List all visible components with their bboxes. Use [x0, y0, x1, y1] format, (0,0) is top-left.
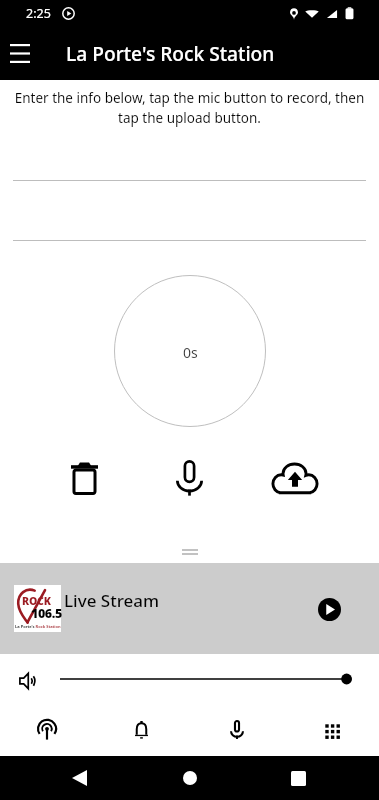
button[interactable]: Record [161, 450, 217, 506]
button[interactable]: Stations [0, 700, 94, 756]
button[interactable]: Home [168, 756, 212, 800]
button[interactable]: Back [57, 756, 101, 800]
staticText: 2:25 [26, 5, 51, 22]
staticText: 106.5 [31, 605, 62, 622]
staticText: La Porte's Rock Station [15, 624, 61, 629]
button[interactable]: Upload recording [267, 450, 323, 506]
staticText: 0s [183, 343, 198, 362]
staticText: Live Stream [64, 589, 160, 612]
button[interactable]: Record [189, 700, 284, 756]
button[interactable]: Delete recording [56, 450, 112, 506]
button[interactable]: Volume [9, 662, 46, 699]
button[interactable]: Live Stream [0, 563, 379, 654]
button[interactable]: Open navigation menu [0, 26, 47, 80]
button[interactable]: Recent apps [276, 756, 320, 800]
button[interactable]: Volume slider [60, 665, 352, 693]
button[interactable]: Expand player [0, 545, 379, 563]
staticText: La Porte's Rock Station [66, 40, 275, 66]
button[interactable]: Play live stream [306, 586, 352, 632]
button[interactable]: Alerts [94, 700, 189, 756]
staticText: ROCK [22, 594, 51, 608]
button[interactable]: More [284, 700, 379, 756]
staticText: Enter the info below, tap the mic button… [10, 89, 369, 127]
